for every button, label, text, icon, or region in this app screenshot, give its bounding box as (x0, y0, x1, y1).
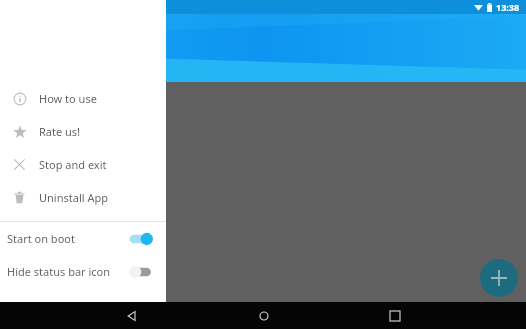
button[interactable]: Start on boot (0, 222, 166, 255)
staticText: 13:38 (496, 1, 520, 13)
button[interactable]: Stop and exit (0, 148, 166, 181)
button[interactable]: Hide status bar icon (0, 255, 166, 288)
staticText: Start on boot (7, 231, 128, 246)
button[interactable]: Recents (381, 302, 408, 329)
button[interactable]: Back (118, 302, 145, 329)
button[interactable]: Add (480, 259, 518, 297)
staticText: Hide status bar icon (7, 264, 128, 279)
button[interactable]: How to use (0, 82, 166, 115)
button[interactable]: Home (250, 302, 277, 329)
button[interactable]: Rate us! (0, 115, 166, 148)
staticText: Uninstall App (39, 190, 108, 205)
button[interactable]: Uninstall App (0, 181, 166, 214)
staticText: Rate us! (39, 124, 81, 139)
staticText: Stop and exit (39, 157, 107, 172)
staticText: How to use (39, 91, 97, 106)
